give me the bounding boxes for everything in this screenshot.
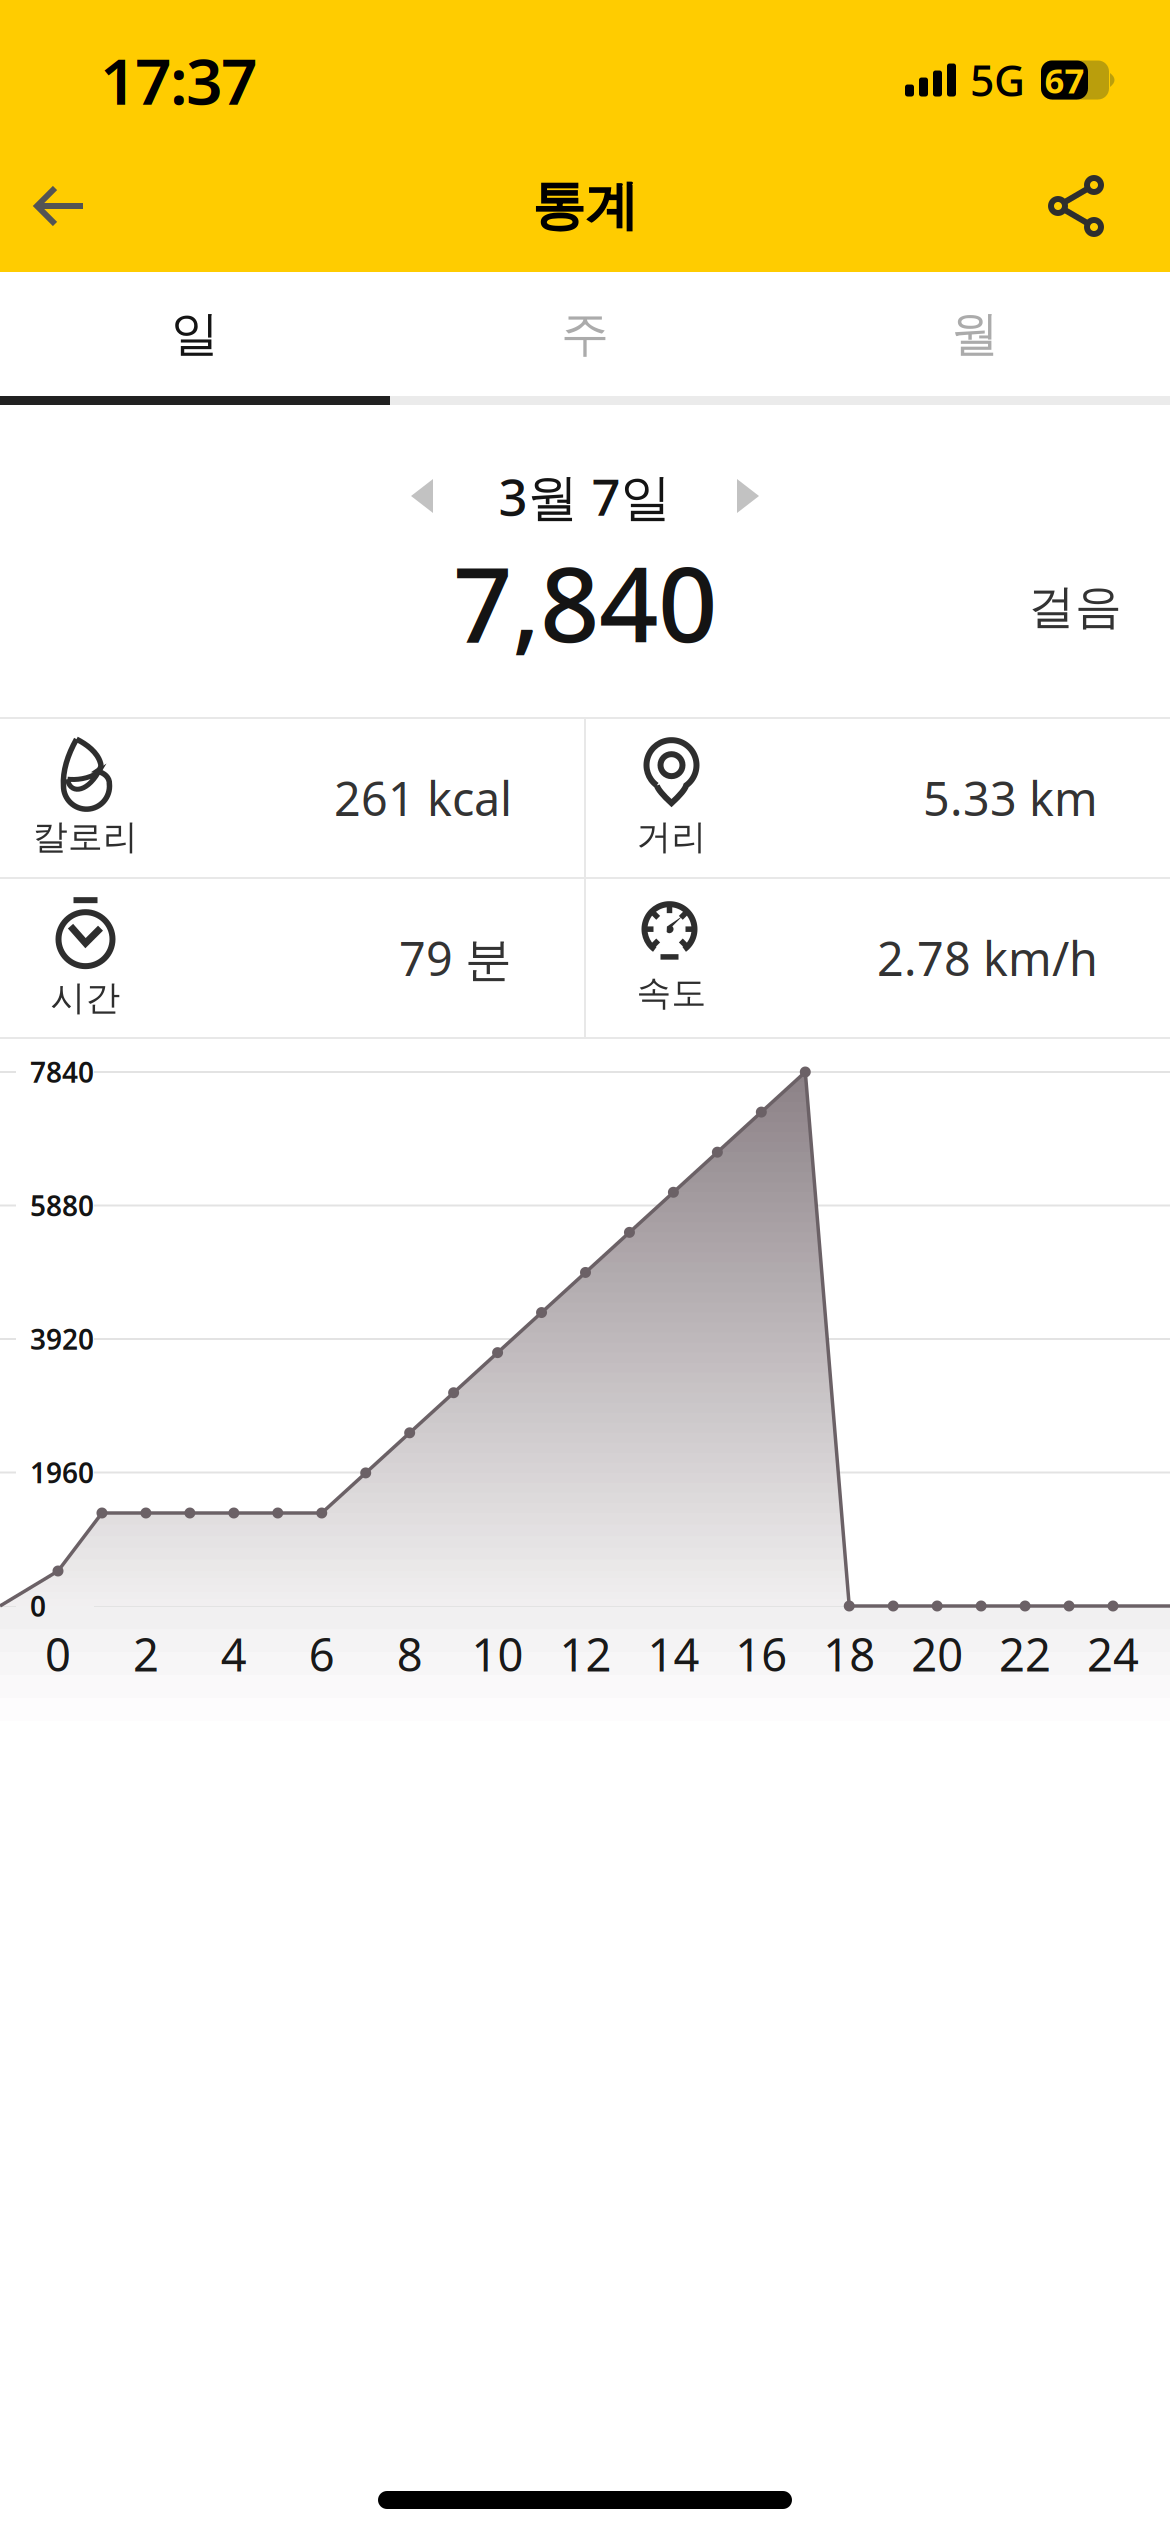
staticText: 일 — [171, 304, 219, 364]
button[interactable]: Share — [1048, 145, 1170, 267]
staticText: 12 — [559, 1624, 611, 1684]
staticText: 5880 — [30, 1187, 94, 1224]
staticText: 0 — [30, 1587, 46, 1625]
staticText: 월 — [951, 304, 999, 364]
staticText: 14 — [647, 1624, 699, 1684]
staticText: 2.78 km/h — [877, 927, 1098, 989]
button[interactable]: 월 — [780, 272, 1170, 396]
staticText: 8 — [397, 1624, 423, 1684]
staticText: 4 — [221, 1624, 247, 1684]
staticText: 24 — [1087, 1624, 1139, 1684]
staticText: 3920 — [30, 1320, 94, 1358]
button[interactable]: Next day — [725, 467, 771, 525]
staticText: 칼로리 — [33, 815, 138, 859]
button[interactable]: Back — [0, 145, 86, 267]
staticText: 시간 — [50, 976, 120, 1020]
staticText: 17:37 — [100, 37, 258, 122]
staticText: 주 — [561, 304, 609, 364]
button[interactable]: Previous day — [399, 467, 445, 525]
staticText: 22 — [999, 1624, 1051, 1684]
staticText: 2 — [133, 1624, 159, 1684]
staticText: 3월 7일 — [498, 461, 671, 530]
button[interactable]: 주 — [390, 272, 780, 396]
staticText: 6 — [309, 1624, 335, 1684]
button[interactable]: 일 — [0, 272, 390, 396]
staticText: 1960 — [30, 1454, 94, 1491]
staticText: 걸음 — [1028, 578, 1122, 636]
staticText: 7,840 — [453, 533, 717, 671]
staticText: 79 분 — [399, 927, 512, 989]
staticText: 속도 — [636, 971, 706, 1015]
staticText: 67 — [1044, 57, 1084, 103]
staticText: 18 — [823, 1624, 875, 1684]
staticText: 261 kcal — [334, 767, 512, 829]
staticText: 5.33 km — [923, 767, 1098, 829]
staticText: 20 — [911, 1624, 963, 1684]
staticText: 7840 — [30, 1053, 94, 1091]
staticText: 5G — [970, 52, 1025, 108]
staticText: 거리 — [636, 815, 706, 859]
staticText: 10 — [472, 1624, 524, 1684]
staticText: 통계 — [532, 172, 638, 240]
staticText: 0 — [45, 1624, 71, 1684]
staticText: 16 — [735, 1624, 787, 1684]
